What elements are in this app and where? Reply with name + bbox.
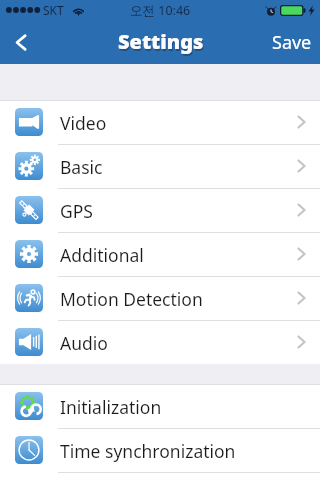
button[interactable]: Initialization (0, 385, 320, 428)
button[interactable]: Basic (0, 145, 320, 188)
staticText: 오전 10:46 (130, 2, 191, 19)
button[interactable]: Video (0, 101, 320, 144)
staticText: Save (272, 30, 312, 54)
staticText: Basic (60, 155, 103, 179)
staticText: Additional (60, 243, 144, 267)
button[interactable]: Audio (0, 321, 320, 364)
button[interactable]: Back (0, 20, 41, 64)
staticText: Initialization (60, 395, 162, 419)
button[interactable]: GPS (0, 189, 320, 232)
button[interactable]: Motion Detection (0, 277, 320, 320)
staticText: Audio (60, 331, 108, 355)
staticText: Time synchronization (60, 439, 236, 463)
staticText: Video (60, 111, 107, 135)
button[interactable]: Time synchronization (0, 429, 320, 472)
staticText: Settings (119, 30, 205, 57)
staticText: Settings (118, 28, 204, 55)
staticText: Motion Detection (60, 287, 203, 311)
staticText: SKT (43, 2, 64, 18)
button[interactable]: Save (260, 20, 320, 64)
staticText: GPS (60, 199, 93, 223)
button[interactable]: Additional (0, 233, 320, 276)
